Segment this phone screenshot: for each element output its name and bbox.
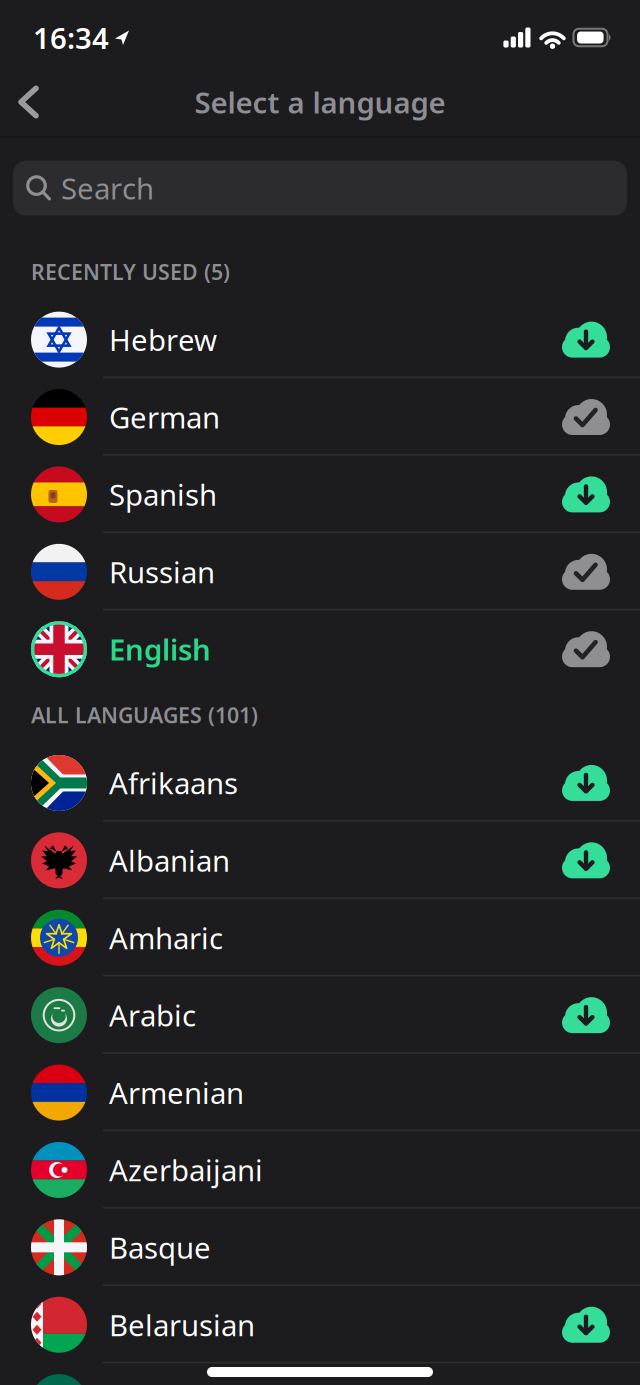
staticText: Amharic bbox=[109, 918, 223, 957]
button[interactable]: Albanian bbox=[0, 822, 640, 899]
button[interactable]: Belarusian bbox=[0, 1286, 640, 1363]
staticText: Spanish bbox=[109, 475, 217, 514]
button[interactable]: Arabic bbox=[0, 976, 640, 1054]
button[interactable]: Afrikaans bbox=[0, 744, 640, 822]
staticText: German bbox=[109, 398, 220, 437]
staticText: Search bbox=[61, 169, 154, 208]
button[interactable]: Armenian bbox=[0, 1054, 640, 1131]
staticText: English bbox=[109, 630, 211, 669]
staticText: Russian bbox=[109, 552, 215, 591]
staticText: 16:34 bbox=[33, 18, 109, 57]
staticText: Belarusian bbox=[109, 1305, 255, 1344]
button[interactable]: Bengali bbox=[0, 1363, 640, 1385]
button[interactable]: Amharic bbox=[0, 899, 640, 976]
button[interactable]: Search bbox=[0, 161, 640, 216]
button[interactable]: Russian bbox=[0, 533, 640, 610]
button[interactable]: Azerbaijani bbox=[0, 1131, 640, 1209]
staticText: Hebrew bbox=[109, 320, 217, 359]
staticText: Basque bbox=[109, 1228, 211, 1267]
staticText: Afrikaans bbox=[109, 763, 238, 802]
staticText: Azerbaijani bbox=[109, 1150, 263, 1189]
button[interactable]: English bbox=[0, 610, 640, 688]
button[interactable]: Hebrew bbox=[0, 301, 640, 378]
staticText: Select a language bbox=[194, 82, 445, 121]
button[interactable]: Back bbox=[0, 71, 39, 132]
staticText: ALL LANGUAGES (101) bbox=[31, 701, 258, 729]
staticText: Armenian bbox=[109, 1073, 244, 1112]
staticText: Arabic bbox=[109, 996, 196, 1035]
staticText: Albanian bbox=[109, 841, 230, 880]
button[interactable]: Spanish bbox=[0, 456, 640, 533]
staticText: RECENTLY USED (5) bbox=[31, 258, 230, 286]
button[interactable]: Basque bbox=[0, 1209, 640, 1286]
button[interactable]: German bbox=[0, 378, 640, 456]
